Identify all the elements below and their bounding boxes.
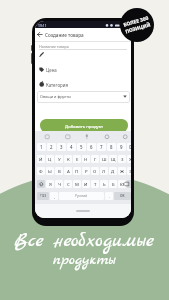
button[interactable]: 6: [87, 143, 96, 151]
button[interactable]: ,: [50, 192, 58, 200]
staticText: Ч: [58, 181, 61, 187]
staticText: 3: [60, 144, 63, 150]
button[interactable]: Г: [91, 155, 99, 163]
button[interactable]: OK: [114, 192, 131, 200]
button[interactable]: Ф: [37, 167, 45, 175]
staticText: 7: [100, 144, 103, 150]
button[interactable]: Б: [109, 180, 117, 188]
staticText: 1: [40, 144, 43, 150]
button[interactable]: Л: [100, 167, 108, 175]
button[interactable]: 9: [117, 143, 126, 151]
staticText: Г: [94, 156, 97, 162]
staticText: Я: [49, 181, 52, 187]
staticText: БОЛЕЕ 300: [123, 15, 149, 29]
staticText: Ю: [120, 181, 125, 187]
button[interactable]: .: [105, 192, 113, 200]
button[interactable]: А: [64, 167, 72, 175]
button[interactable]: Название товара: [35, 42, 131, 52]
staticText: Русский: [75, 194, 88, 198]
button[interactable]: Й: [37, 155, 45, 163]
staticText: Ц: [48, 156, 52, 162]
button[interactable]: О: [91, 167, 99, 175]
staticText: С: [67, 181, 70, 187]
staticText: 4: [70, 144, 73, 150]
staticText: продукты: [53, 250, 116, 270]
staticText: 9: [120, 144, 123, 150]
button[interactable]: [37, 180, 45, 188]
button[interactable]: К: [64, 155, 72, 163]
button[interactable]: 0: [127, 143, 131, 151]
button[interactable]: Н: [82, 155, 90, 163]
staticText: Цена: [46, 67, 57, 73]
staticText: Овощи и фрукты: [40, 94, 71, 99]
button[interactable]: З: [118, 155, 126, 163]
button[interactable]: Ю: [118, 180, 126, 188]
staticText: З: [121, 156, 124, 162]
staticText: Л: [102, 168, 106, 174]
button[interactable]: 8: [107, 143, 116, 151]
staticText: Э: [129, 168, 131, 174]
button[interactable]: С: [64, 180, 72, 188]
staticText: Добавить продукт: [65, 123, 103, 129]
staticText: OK: [120, 194, 125, 198]
button[interactable]: 1: [37, 143, 46, 151]
button[interactable]: П: [73, 167, 81, 175]
button[interactable]: Е: [73, 155, 81, 163]
staticText: Ф: [39, 168, 43, 174]
staticText: 6: [90, 144, 93, 150]
staticText: Н: [84, 156, 88, 162]
button[interactable]: ?123: [37, 192, 49, 200]
button[interactable]: Русский: [59, 192, 104, 200]
staticText: 8: [110, 144, 113, 150]
button[interactable]: 3: [57, 143, 66, 151]
button[interactable]: 2: [47, 143, 56, 151]
staticText: Щ: [111, 156, 116, 162]
button[interactable]: Р: [82, 167, 90, 175]
button[interactable]: 7: [97, 143, 106, 151]
button[interactable]: М: [73, 180, 81, 188]
staticText: О: [93, 168, 97, 174]
button[interactable]: Э: [127, 167, 131, 175]
staticText: Категория: [46, 82, 68, 88]
staticText: ПОЗИЦИЙ: [124, 21, 151, 35]
button[interactable]: Ш: [100, 155, 108, 163]
button[interactable]: [127, 180, 131, 188]
button[interactable]: Щ: [109, 155, 117, 163]
staticText: 0: [129, 144, 131, 150]
button[interactable]: БОЛЕЕ 300: [120, 8, 154, 42]
staticText: В: [58, 168, 61, 174]
button[interactable]: Ж: [118, 167, 126, 175]
staticText: .: [109, 194, 110, 199]
button[interactable]: Цена: [35, 65, 131, 74]
button[interactable]: В: [55, 167, 63, 175]
button[interactable]: Ы: [46, 167, 54, 175]
staticText: Ы: [48, 168, 52, 174]
staticText: Создание товара: [45, 32, 84, 38]
button[interactable]: 5: [77, 143, 86, 151]
button[interactable]: Категория: [35, 80, 131, 89]
staticText: Р: [85, 168, 88, 174]
staticText: ?123: [40, 194, 47, 198]
button[interactable]: Я: [46, 180, 54, 188]
staticText: К: [67, 156, 70, 162]
staticText: 19:11: [38, 23, 47, 28]
button[interactable]: Добавить продукт: [40, 119, 128, 132]
staticText: И: [84, 181, 88, 187]
button[interactable]: 4: [67, 143, 76, 151]
button[interactable]: Ц: [46, 155, 54, 163]
staticText: ,: [54, 194, 55, 199]
button[interactable]: У: [55, 155, 63, 163]
button[interactable]: Х: [127, 155, 131, 163]
button[interactable]: Овощи и фрукты: [37, 91, 130, 103]
button[interactable]: Ч: [55, 180, 63, 188]
button[interactable]: [35, 28, 45, 41]
staticText: Й: [39, 156, 43, 162]
button[interactable]: Ь: [100, 180, 108, 188]
staticText: Название товара: [39, 44, 69, 49]
button[interactable]: Т: [91, 180, 99, 188]
staticText: Б: [112, 181, 115, 187]
button[interactable]: И: [82, 180, 90, 188]
button[interactable]: Д: [109, 167, 117, 175]
staticText: А: [67, 168, 70, 174]
staticText: Д: [111, 168, 115, 174]
